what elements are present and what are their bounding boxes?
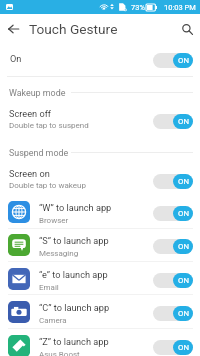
staticText: Browser [39, 216, 69, 225]
staticText: ON [178, 209, 189, 218]
staticText: ON [178, 56, 189, 65]
button[interactable]: “Z” to launch app [0, 330, 200, 356]
staticText: Double tap to suspend [9, 121, 89, 130]
button[interactable]: Wakeup mode [9, 88, 66, 98]
button[interactable]: Suspend mode [9, 148, 69, 158]
staticText: Wakeup mode [9, 88, 66, 98]
button[interactable]: ON [153, 53, 193, 68]
staticText: ON [178, 177, 189, 186]
staticText: “W” to launch app [39, 202, 112, 213]
button[interactable]: Screen on [0, 162, 200, 195]
staticText: On [10, 53, 22, 64]
button[interactable]: ON [153, 273, 193, 288]
button[interactable]: ON [153, 174, 193, 189]
button[interactable]: Search [172, 14, 200, 44]
staticText: “e” to launch app [39, 269, 108, 280]
staticText: Messaging [39, 249, 79, 258]
button[interactable]: “W” to launch app [0, 196, 200, 229]
staticText: Camera [39, 316, 67, 325]
button[interactable]: On [0, 44, 200, 77]
button[interactable]: Back [0, 14, 26, 44]
button[interactable]: “C” to launch app [0, 296, 200, 329]
button[interactable]: Screen off [0, 102, 200, 135]
staticText: ON [178, 117, 189, 126]
staticText: ON [178, 309, 189, 318]
staticText: Screen on [9, 168, 50, 179]
staticText: “C” to launch app [39, 302, 110, 313]
button[interactable]: ON [153, 239, 193, 254]
button[interactable]: “e” to launch app [0, 263, 200, 296]
staticText: Suspend mode [9, 148, 69, 158]
staticText: “Z” to launch app [39, 336, 109, 347]
button[interactable]: ON [153, 340, 193, 355]
button[interactable]: ON [153, 114, 193, 129]
staticText: 10:03 PM [164, 3, 196, 12]
staticText: Asus Boost [39, 350, 80, 356]
staticText: ON [178, 242, 189, 251]
staticText: 73% [131, 3, 145, 12]
staticText: Touch Gesture [29, 21, 118, 37]
staticText: ON [178, 343, 189, 352]
button[interactable]: ON [153, 306, 193, 321]
staticText: ON [178, 276, 189, 285]
staticText: Screen off [9, 108, 52, 119]
staticText: Email [39, 283, 59, 292]
staticText: Double tap to wakeup [9, 181, 86, 190]
staticText: “S” to launch app [39, 235, 109, 246]
button[interactable]: ON [153, 206, 193, 221]
button[interactable]: “S” to launch app [0, 229, 200, 262]
